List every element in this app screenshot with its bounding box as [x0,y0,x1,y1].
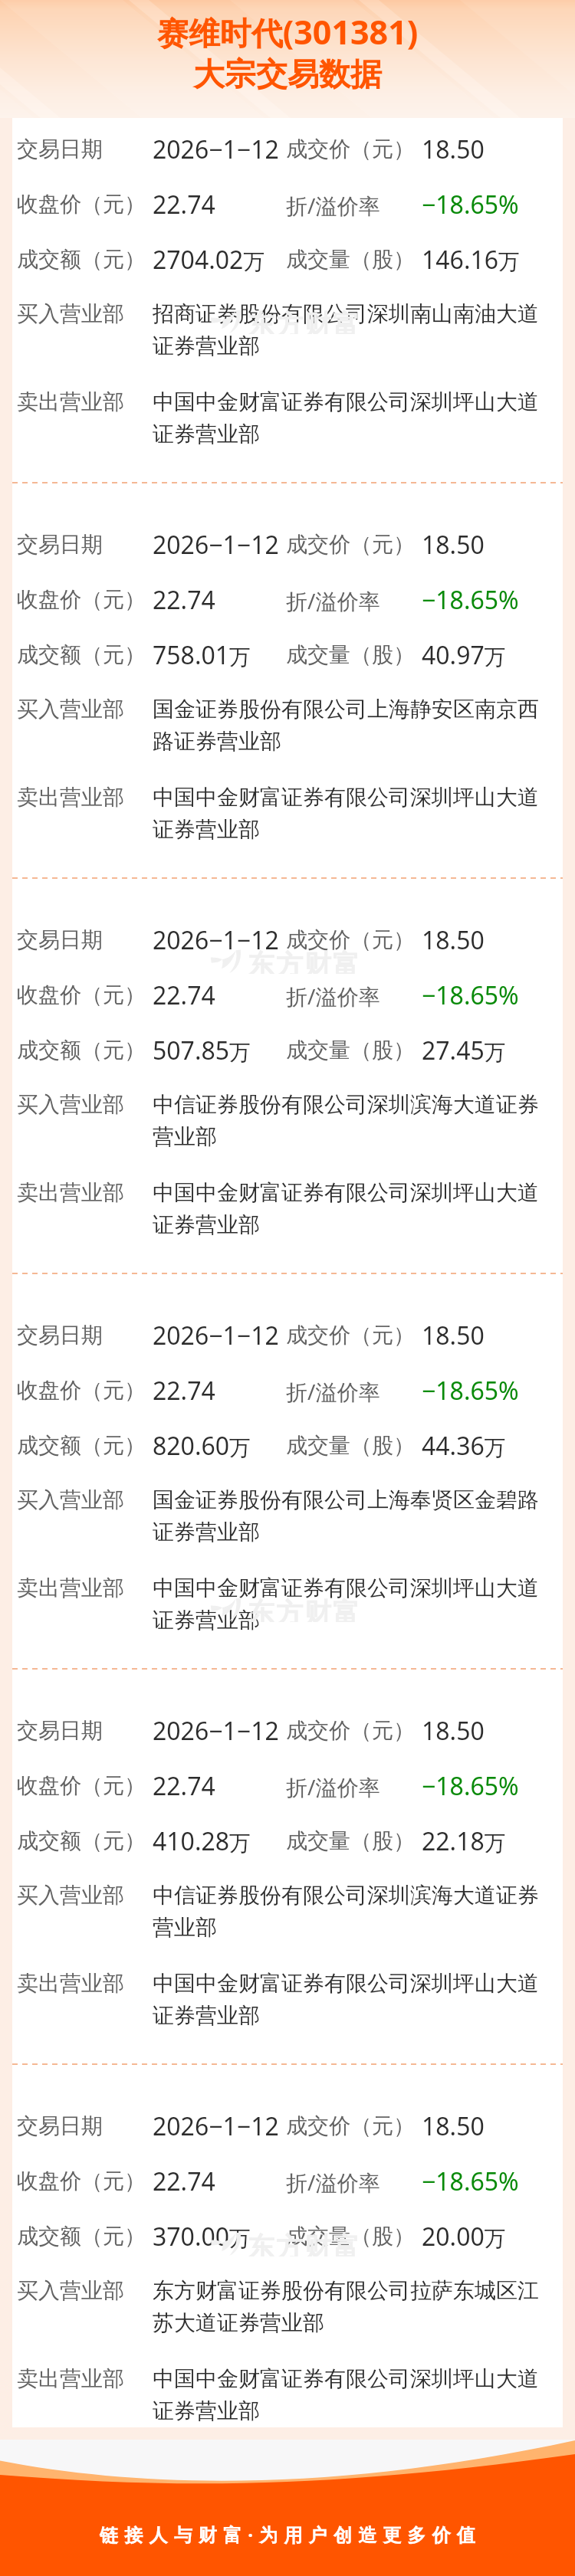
staticText: 成交额（元） [17,246,146,273]
staticText: 成交价（元） [286,1717,415,1744]
staticText: 20.00万 [422,2220,506,2253]
staticText: 40.97万 [422,638,506,672]
staticText: 成交价（元） [286,2112,415,2139]
staticText: −18.65% [422,583,519,617]
staticText: 交易日期 [17,926,103,953]
staticText: 成交价（元） [286,136,415,162]
staticText: 证券营业部 [153,333,260,359]
staticText: 18.50 [422,2109,485,2143]
staticText: 收盘价（元） [17,1772,146,1799]
staticText: 折/溢价率 [286,586,380,615]
staticText: −18.65% [422,2165,519,2198]
staticText: 交易日期 [17,1717,103,1744]
staticText: 收盘价（元） [17,1377,146,1404]
staticText: 证券营业部 [153,1519,260,1545]
staticText: 22.74 [153,1374,215,1408]
staticText: 买入营业部 [17,300,124,327]
staticText: 卖出营业部 [17,1970,124,1997]
staticText: 收盘价（元） [17,982,146,1008]
staticText: 22.18万 [422,1824,506,1858]
staticText: 2704.02万 [153,243,265,277]
staticText: 22.74 [153,583,215,617]
staticText: 东方财富 [247,2230,360,2256]
staticText: 27.45万 [422,1034,506,1067]
staticText: 赛维时代(301381) [0,9,575,54]
staticText: −18.65% [422,1374,519,1408]
staticText: 卖出营业部 [17,2365,124,2392]
staticText: 成交额（元） [17,1432,146,1459]
staticText: 2026−1−12 [153,1714,279,1748]
staticText: 营业部 [153,1914,217,1941]
staticText: 买入营业部 [17,1091,124,1118]
staticText: −18.65% [422,188,519,221]
staticText: 交易日期 [17,531,103,558]
staticText: 买入营业部 [17,1486,124,1513]
staticText: 折/溢价率 [286,191,380,220]
staticText: 营业部 [153,1123,217,1150]
staticText: 成交量（股） [286,246,415,273]
button[interactable]: 交易日期 [12,1304,563,1699]
staticText: 18.50 [422,528,485,562]
staticText: 苏大道证券营业部 [153,2309,324,2336]
staticText: 中信证券股份有限公司深圳滨海大道证券 [153,1091,539,1118]
staticText: 2026−1−12 [153,528,279,562]
staticText: 2026−1−12 [153,133,279,166]
button[interactable]: 交易日期 [12,118,563,513]
button[interactable]: 交易日期 [12,1699,563,2094]
staticText: 507.85万 [153,1034,251,1067]
staticText: 大宗交易数据 [0,55,575,95]
staticText: 折/溢价率 [286,1772,380,1801]
staticText: 22.74 [153,1769,215,1803]
staticText: 证券营业部 [153,816,260,843]
staticText: 22.74 [153,188,215,221]
staticText: 东方财富 [247,308,360,334]
staticText: 18.50 [422,133,485,166]
staticText: 成交额（元） [17,1037,146,1064]
staticText: −18.65% [422,1769,519,1803]
staticText: 成交价（元） [286,926,415,953]
staticText: 证券营业部 [153,1211,260,1238]
staticText: 买入营业部 [17,2277,124,2304]
staticText: 交易日期 [17,136,103,162]
staticText: 18.50 [422,1319,485,1352]
staticText: 成交量（股） [286,2223,415,2250]
staticText: 卖出营业部 [17,1179,124,1206]
staticText: 招商证券股份有限公司深圳南山南油大道 [153,300,539,327]
staticText: 中国中金财富证券有限公司深圳坪山大道 [153,1575,539,1601]
staticText: 758.01万 [153,638,251,672]
staticText: 交易日期 [17,1322,103,1349]
staticText: 证券营业部 [153,1607,260,1634]
staticText: 卖出营业部 [17,1575,124,1601]
staticText: 国金证券股份有限公司上海奉贤区金碧路 [153,1486,539,1513]
staticText: 东方财富证券股份有限公司拉萨东城区江 [153,2277,539,2304]
staticText: 证券营业部 [153,421,260,447]
staticText: 国金证券股份有限公司上海静安区南京西 [153,696,539,723]
staticText: 折/溢价率 [286,1377,380,1406]
staticText: 中信证券股份有限公司深圳滨海大道证券 [153,1882,539,1909]
staticText: 路证券营业部 [153,728,281,755]
button[interactable]: 交易日期 [12,513,563,908]
staticText: 成交量（股） [286,641,415,668]
staticText: 成交额（元） [17,641,146,668]
staticText: 链接人与财富·为用户创造更多价值 [3,2522,575,2547]
button[interactable]: 交易日期 [12,909,563,1303]
staticText: 18.50 [422,923,485,957]
staticText: 22.74 [153,978,215,1012]
staticText: 中国中金财富证券有限公司深圳坪山大道 [153,2365,539,2392]
staticText: 证券营业部 [153,2397,260,2424]
staticText: 2026−1−12 [153,2109,279,2143]
staticText: 370.00万 [153,2220,251,2253]
staticText: 折/溢价率 [286,2168,380,2197]
staticText: 中国中金财富证券有限公司深圳坪山大道 [153,784,539,811]
staticText: 买入营业部 [17,696,124,723]
staticText: 中国中金财富证券有限公司深圳坪山大道 [153,1970,539,1997]
staticText: 146.16万 [422,243,521,277]
staticText: 2026−1−12 [153,1319,279,1352]
staticText: 820.60万 [153,1429,251,1463]
staticText: 买入营业部 [17,1882,124,1909]
button[interactable]: 交易日期 [12,2095,563,2489]
staticText: 折/溢价率 [286,982,380,1011]
staticText: 成交价（元） [286,1322,415,1349]
staticText: 卖出营业部 [17,784,124,811]
staticText: 证券营业部 [153,2002,260,2029]
